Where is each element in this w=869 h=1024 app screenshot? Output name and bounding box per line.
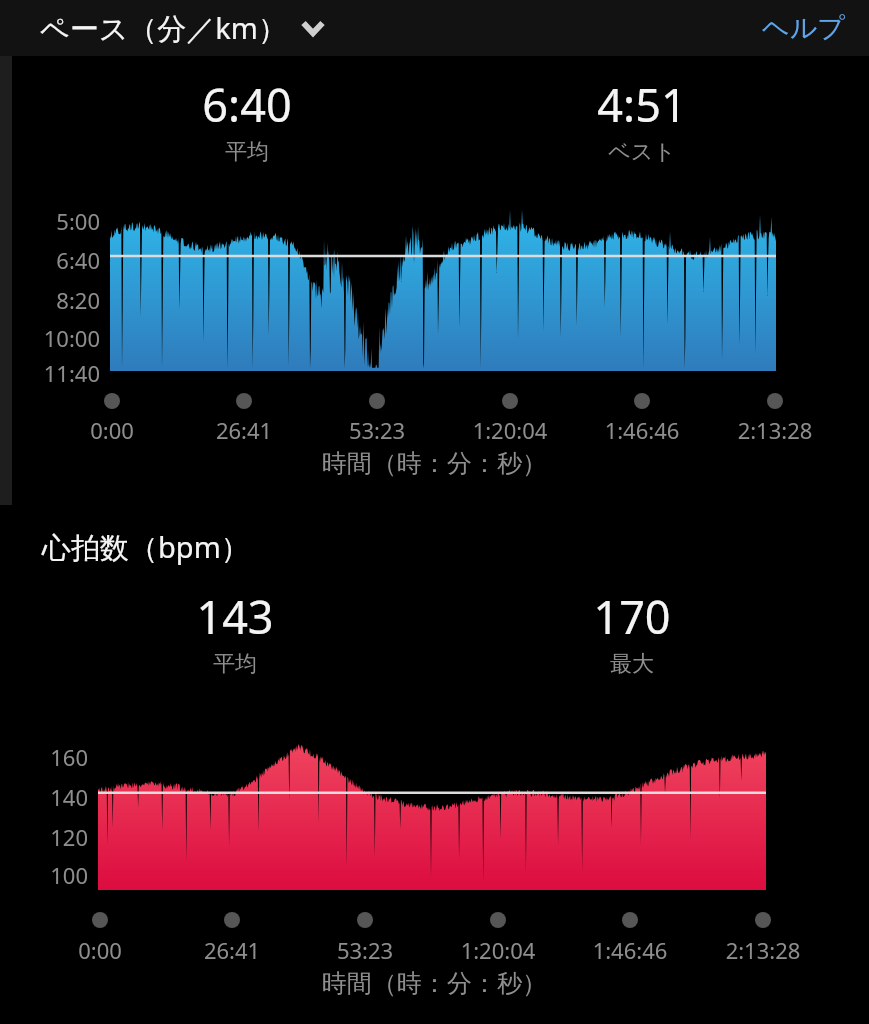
staticText: 1:46:46 <box>545 935 715 965</box>
other: Change metric <box>299 14 327 42</box>
staticText: 100 <box>0 860 88 890</box>
staticText: ヘルプ <box>762 11 845 45</box>
staticText: 2:13:28 <box>678 935 848 965</box>
other: Time axis <box>0 392 869 412</box>
staticText: 143 <box>196 586 274 647</box>
staticText: 0:00 <box>15 935 185 965</box>
staticText: 53:23 <box>280 935 450 965</box>
staticText: 1:20:04 <box>413 935 583 965</box>
staticText: 6:40 <box>0 245 100 275</box>
staticText: 時間（時：分：秒） <box>0 448 869 479</box>
staticText: 心拍数（bpm） <box>42 527 250 567</box>
staticText: 120 <box>0 822 88 852</box>
staticText: 160 <box>0 742 88 772</box>
staticText: 4:51 <box>597 74 687 135</box>
staticText: 11:40 <box>0 358 100 388</box>
staticText: 1:46:46 <box>557 415 727 445</box>
staticText: 26:41 <box>159 415 329 445</box>
staticText: 平均 <box>225 138 269 166</box>
staticText: 時間（時：分：秒） <box>0 968 869 999</box>
staticText: ベスト <box>608 138 676 166</box>
staticText: 140 <box>0 782 88 812</box>
staticText: 2:13:28 <box>690 415 860 445</box>
staticText: 最大 <box>610 650 654 678</box>
staticText: 53:23 <box>292 415 462 445</box>
button[interactable]: ヘルプ <box>754 5 853 51</box>
staticText: 6:40 <box>202 74 292 135</box>
staticText: 26:41 <box>147 935 317 965</box>
staticText: 8:20 <box>0 285 100 315</box>
staticText: 5:00 <box>0 206 100 236</box>
staticText: 10:00 <box>0 323 100 353</box>
staticText: 0:00 <box>27 415 197 445</box>
staticText: 1:20:04 <box>425 415 595 445</box>
staticText: 平均 <box>213 650 257 678</box>
staticText: 170 <box>593 586 671 647</box>
other: Time axis <box>0 911 869 931</box>
staticText: ペース（分／km） <box>40 8 287 48</box>
button[interactable]: ペース（分／km） <box>40 4 337 52</box>
